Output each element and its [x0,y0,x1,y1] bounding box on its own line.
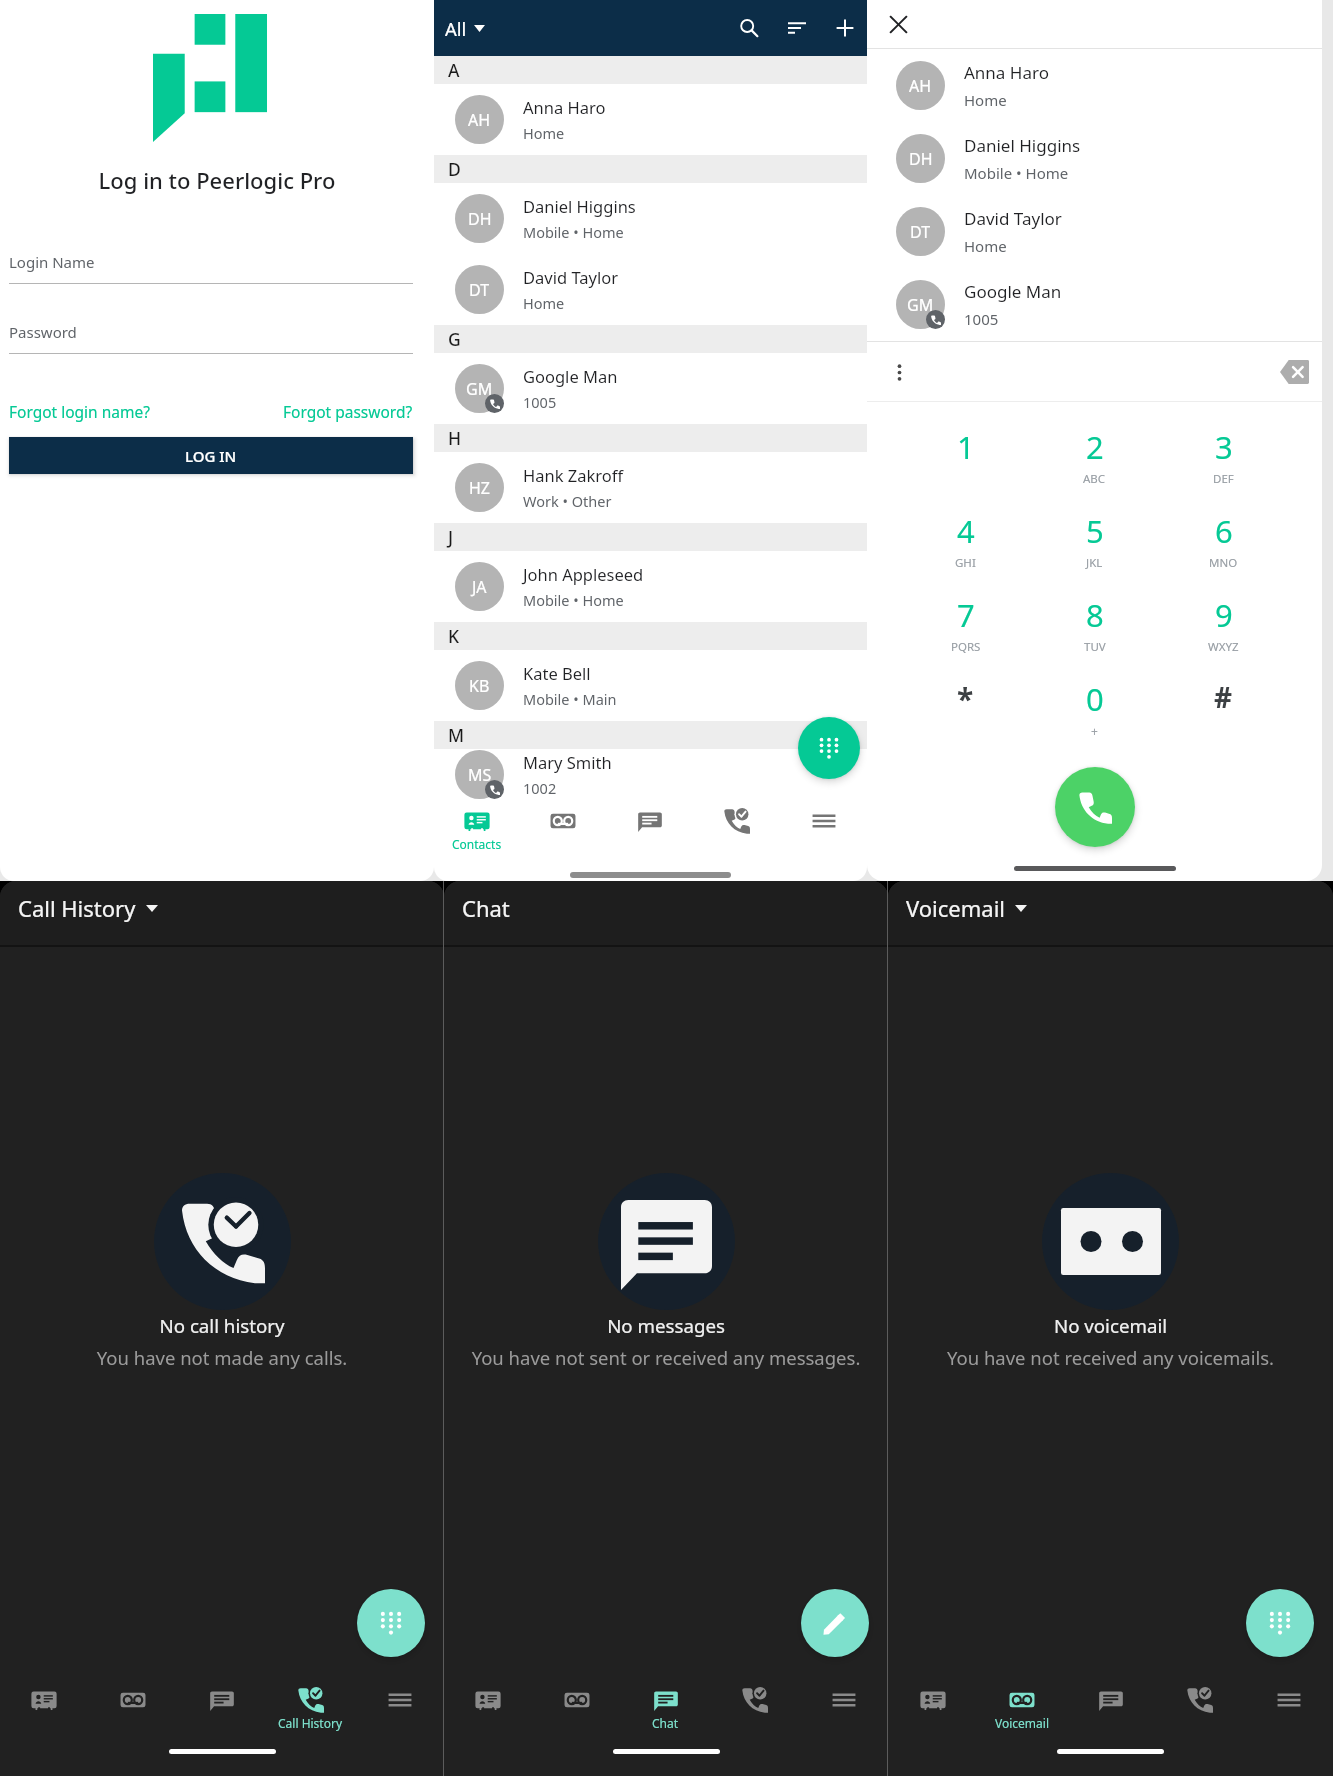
button[interactable]: 4 [901,505,1030,589]
staticText: Google Man [523,365,618,387]
staticText: K [448,624,460,648]
staticText: John Appleseed [523,563,644,585]
button[interactable]: Search [727,6,771,50]
button[interactable]: * [901,673,1030,757]
button[interactable]: Sort [775,6,819,50]
staticText: MS [468,764,492,786]
button[interactable]: Call History [1155,1676,1244,1732]
button[interactable]: Voicemail [532,1676,621,1732]
staticText: Forgot login name? [9,401,150,422]
staticText: 7 [957,594,975,636]
staticText: No call history [0,1313,444,1338]
button[interactable]: LOG IN [9,437,413,474]
button[interactable]: DH [867,122,1322,195]
staticText: Mary Smith [523,751,612,773]
button[interactable]: Voicemail [88,1676,177,1732]
staticText: PQRS [951,639,981,655]
staticText: You have not sent or received any messag… [444,1345,888,1370]
button[interactable]: Voicemail [977,1676,1066,1732]
button[interactable]: Forgot password? [283,401,413,422]
button[interactable]: JA [434,551,867,622]
staticText: Daniel Higgins [523,195,636,217]
staticText: GM [907,294,934,316]
button[interactable]: Add contact [823,6,867,50]
button[interactable]: New message [801,1589,869,1657]
button[interactable]: Contacts [0,1676,88,1732]
button[interactable]: Voicemail [520,800,606,852]
button[interactable]: Call History [266,1676,355,1732]
staticText: Mobile • Home [964,163,1069,183]
button[interactable]: DT [867,195,1322,268]
button[interactable]: AH [867,49,1322,122]
staticText: Home [523,293,565,313]
button[interactable]: Voicemail [904,893,1029,923]
button[interactable]: DH [434,183,867,254]
staticText: Home [964,236,1007,256]
button[interactable]: Chat [177,1676,266,1732]
button[interactable]: HZ [434,452,867,523]
button[interactable]: More [1244,1676,1333,1732]
staticText: Hank Zakroff [523,464,624,486]
button[interactable]: 2 [1030,421,1159,505]
staticText: AH [909,75,932,97]
staticText: DT [469,279,490,301]
button[interactable]: Call [1055,767,1135,847]
button[interactable]: # [1159,673,1288,757]
staticText: Call History [18,893,136,923]
staticText: G [448,327,461,351]
staticText: JKL [1086,555,1103,571]
staticText: A [448,58,460,82]
button[interactable]: GM [867,268,1322,341]
button[interactable]: 0 [1030,673,1159,757]
button[interactable]: Call History [710,1676,799,1732]
staticText: GM [466,378,493,400]
button[interactable]: Chat [1066,1676,1155,1732]
button[interactable]: More [799,1676,888,1732]
button[interactable]: Dialpad [357,1589,425,1657]
button[interactable]: Contacts [888,1676,977,1732]
button[interactable]: 1 [901,421,1030,505]
button[interactable]: Forgot login name? [9,401,150,422]
button[interactable]: GM [434,353,867,424]
button[interactable]: 7 [901,589,1030,673]
staticText: 1005 [964,309,999,329]
button[interactable]: 9 [1159,589,1288,673]
button[interactable]: Call History [693,800,780,852]
staticText: You have not made any calls. [0,1345,444,1370]
button[interactable]: KB [434,650,867,721]
button[interactable]: DT [434,254,867,325]
staticText: 1002 [523,778,557,798]
button[interactable]: MS [434,749,867,800]
button[interactable]: Dialpad [798,717,860,779]
staticText: 6 [1215,510,1233,552]
button[interactable]: Close [879,5,917,43]
staticText: LOG IN [185,446,237,466]
button[interactable]: Chat [606,800,693,852]
button[interactable]: 8 [1030,589,1159,673]
button[interactable]: Call History [16,893,160,923]
staticText: Mobile • Home [523,222,624,242]
staticText: Mobile • Home [523,590,624,610]
button[interactable]: 5 [1030,505,1159,589]
staticText: Chat [462,893,510,923]
button[interactable]: Chat [621,1676,710,1732]
button[interactable]: Contacts [444,1676,532,1732]
staticText: Voicemail [995,1715,1049,1731]
staticText: Work • Other [523,491,612,511]
staticText: Forgot password? [283,401,413,422]
button[interactable]: More options [881,354,917,390]
staticText: ABC [1083,471,1106,487]
button[interactable]: More [780,800,867,852]
staticText: KB [469,675,490,697]
button[interactable]: 3 [1159,421,1288,505]
button[interactable]: Backspace [1276,354,1312,390]
button[interactable]: 6 [1159,505,1288,589]
button[interactable]: All [444,16,486,41]
button[interactable]: Contacts [434,800,520,852]
button[interactable]: More [355,1676,444,1732]
button[interactable]: Dialpad [1246,1589,1314,1657]
button[interactable]: Chat [460,893,512,923]
staticText: HZ [469,477,491,499]
staticText: 3 [1215,426,1233,468]
button[interactable]: AH [434,84,867,155]
